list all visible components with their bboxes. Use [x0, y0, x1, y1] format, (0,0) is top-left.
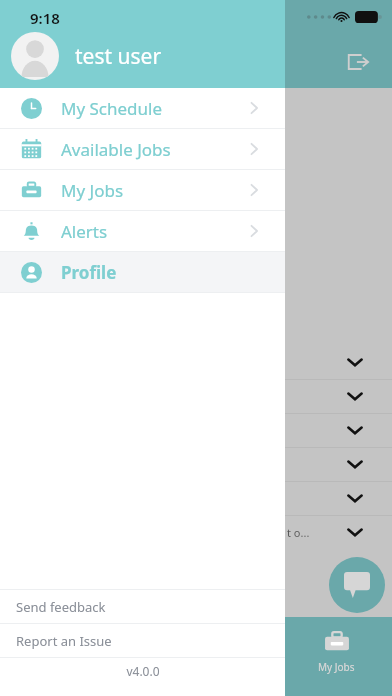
- staticText: Available Jobs: [61, 138, 171, 161]
- button[interactable]: My Jobs: [280, 617, 392, 696]
- staticText: Send feedback: [16, 598, 106, 616]
- button[interactable]: Profile: [0, 252, 285, 292]
- staticText: v4.0.0: [126, 663, 160, 679]
- button[interactable]: My Jobs: [0, 170, 285, 210]
- staticText: My Jobs: [61, 179, 124, 202]
- button[interactable]: Profile photo: [11, 32, 59, 80]
- staticText: My Jobs: [318, 660, 355, 674]
- button[interactable]: Send feedback: [0, 590, 285, 623]
- button[interactable]: Log out: [342, 46, 374, 78]
- staticText: 9:18: [30, 8, 60, 28]
- staticText: t o...: [287, 525, 310, 540]
- button[interactable]: My Schedule: [0, 88, 285, 128]
- button[interactable]: Available Jobs: [0, 129, 285, 169]
- staticText: Profile: [61, 261, 117, 284]
- staticText: test user: [75, 42, 162, 71]
- staticText: Report an Issue: [16, 632, 112, 650]
- button[interactable]: Chat: [329, 557, 385, 613]
- staticText: Alerts: [61, 220, 108, 243]
- button[interactable]: Report an Issue: [0, 624, 285, 657]
- button[interactable]: Alerts: [0, 211, 285, 251]
- staticText: My Schedule: [61, 97, 163, 120]
